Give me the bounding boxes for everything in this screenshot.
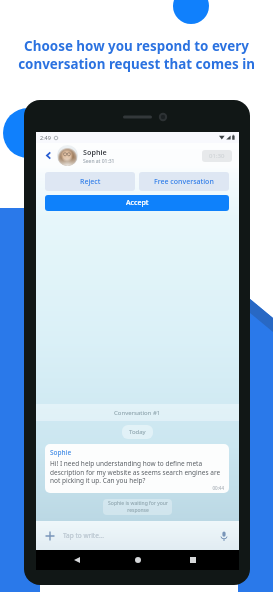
button[interactable]: Back [42, 149, 55, 162]
staticText: Sophie is waiting for your response [108, 500, 168, 514]
button[interactable]: Record voice message [217, 529, 231, 543]
staticText: Sophie [83, 147, 107, 157]
button[interactable]: Accept [45, 195, 229, 211]
button[interactable]: Add attachment [43, 529, 57, 543]
staticText: Conversation #1 [114, 409, 161, 417]
staticText: 01:30 [209, 152, 225, 160]
staticText: Today [129, 428, 146, 436]
button[interactable]: Free conversation [139, 172, 229, 191]
button[interactable]: Reject [45, 172, 135, 191]
staticText: Seen at 01:31 [83, 158, 115, 165]
staticText: 00:44 [50, 485, 224, 491]
staticText: Sophie [50, 448, 72, 457]
staticText: Accept [126, 198, 149, 208]
staticText: Hi! I need help understanding how to def… [50, 459, 224, 485]
staticText: Choose how you respond to every conversa… [0, 37, 273, 73]
button[interactable]: Home [128, 550, 148, 570]
button[interactable]: Back [67, 550, 87, 570]
staticText: 2:49 [40, 134, 51, 141]
staticText: Tap to write... [63, 531, 105, 540]
button[interactable]: 01:30 [202, 150, 232, 162]
button[interactable]: Recent apps [183, 550, 203, 570]
staticText: Reject [80, 177, 101, 187]
staticText: Free conversation [154, 177, 214, 187]
